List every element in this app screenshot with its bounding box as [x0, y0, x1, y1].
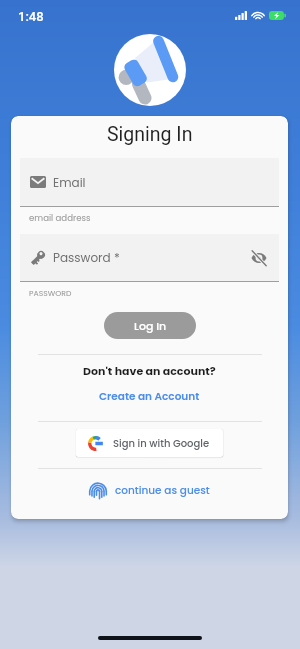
button[interactable]: Log In [104, 312, 196, 339]
button[interactable]: Create an Account [99, 389, 200, 404]
staticText: email address [29, 212, 91, 224]
staticText: Signing In [107, 123, 193, 146]
button[interactable]: Sign in with Google [76, 429, 223, 457]
button[interactable]: Show password [248, 247, 270, 269]
staticText: Log In [134, 318, 167, 333]
staticText: PASSWORD [29, 288, 72, 299]
button[interactable]: continue as guest [89, 480, 210, 500]
staticText: continue as guest [115, 483, 210, 498]
staticText: Password * [53, 249, 120, 266]
staticText: Don't have an account? [83, 363, 216, 378]
button[interactable]: Email [20, 158, 279, 206]
staticText: Email [53, 174, 86, 191]
button[interactable]: Password * [20, 234, 279, 281]
staticText: 1:48 [18, 9, 44, 24]
staticText: Create an Account [99, 389, 200, 404]
staticText: Sign in with Google [113, 436, 210, 450]
